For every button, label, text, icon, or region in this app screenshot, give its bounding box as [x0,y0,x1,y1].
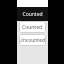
button[interactable]: Counted [19,21,46,33]
button[interactable]: Uncounted [19,34,46,46]
staticText: Uncounted [19,37,46,44]
staticText: Counted [22,24,43,31]
staticText: Counted [22,11,43,18]
